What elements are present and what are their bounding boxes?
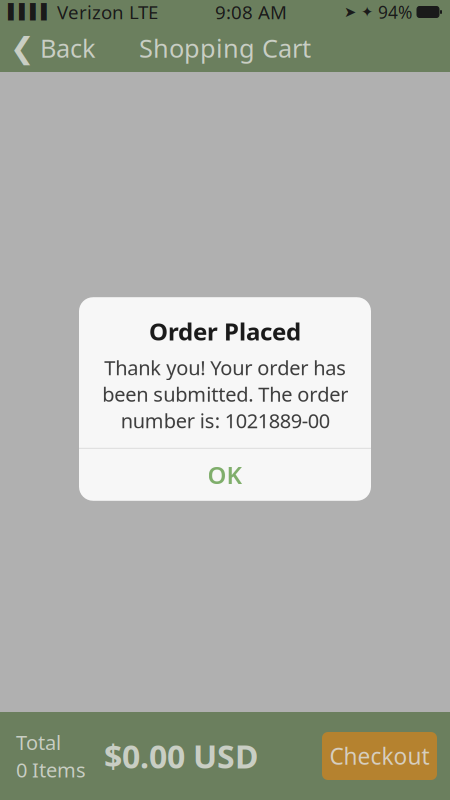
staticText: Back [40,31,96,65]
staticText: 0 Items [16,756,86,783]
staticText: Verizon [57,0,124,24]
staticText: LTE [129,0,158,24]
staticText: Order Placed [149,315,301,347]
staticText: Shopping Cart [139,31,311,65]
staticText: ➤ [344,4,356,20]
staticText: ❮ [10,31,35,65]
staticText: 9:08 AM [215,0,287,24]
button[interactable]: ❮ [0,24,106,72]
staticText: ▌▌▌▌ [8,4,52,20]
staticText: ✦ [361,4,373,20]
staticText: $0.00 USD [104,735,258,777]
staticText: Thank you! Your order has been submitted… [102,354,348,434]
staticText: Total [16,729,61,755]
staticText: 94% [378,0,412,23]
staticText: Checkout [329,741,429,771]
staticText: OK [207,459,242,491]
button[interactable]: Checkout [322,732,437,780]
button[interactable]: OK [79,449,371,501]
